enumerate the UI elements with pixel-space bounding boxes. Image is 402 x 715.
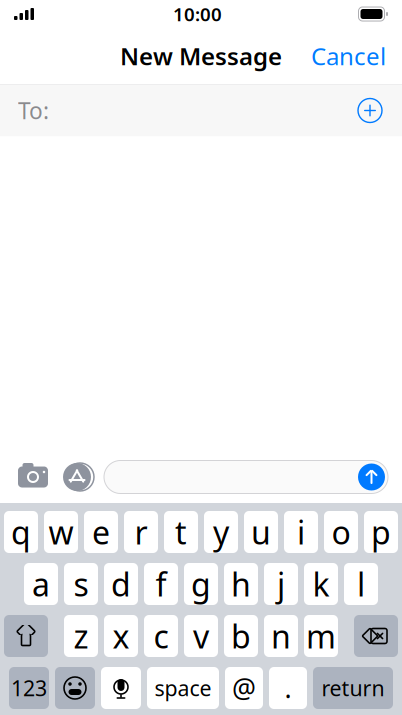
staticText: h — [231, 563, 251, 605]
button[interactable]: d — [104, 563, 138, 605]
staticText: k — [312, 563, 329, 605]
button[interactable]: Camera — [16, 462, 50, 492]
staticText: space — [154, 674, 211, 702]
staticText: @ — [232, 670, 256, 706]
button[interactable]: k — [304, 563, 338, 605]
staticText: s — [73, 563, 88, 605]
button[interactable]: n — [264, 615, 298, 657]
button[interactable]: p — [364, 511, 398, 553]
button[interactable]: . — [269, 667, 307, 709]
staticText: t — [175, 511, 187, 553]
staticText: n — [271, 615, 291, 657]
staticText: i — [297, 511, 305, 553]
button[interactable]: s — [64, 563, 98, 605]
button[interactable]: Add contact — [350, 90, 390, 130]
button[interactable]: e — [84, 511, 118, 553]
button[interactable]: Cancel — [295, 32, 402, 80]
staticText: f — [155, 563, 166, 605]
staticText: a — [32, 563, 50, 605]
staticText: y — [213, 511, 229, 553]
button[interactable]: Shift — [4, 615, 48, 657]
staticText: Cancel — [311, 40, 386, 72]
staticText: b — [231, 615, 251, 657]
staticText: x — [112, 615, 129, 657]
button[interactable]: z — [64, 615, 98, 657]
staticText: l — [357, 563, 365, 605]
staticText: z — [73, 615, 88, 657]
staticText: 10:00 — [173, 2, 222, 26]
button[interactable]: Send — [358, 463, 385, 490]
staticText: p — [371, 511, 391, 553]
button[interactable]: i — [284, 511, 318, 553]
button[interactable]: Apps — [60, 462, 94, 492]
staticText: w — [48, 511, 73, 553]
button[interactable]: u — [244, 511, 278, 553]
button[interactable]: t — [164, 511, 198, 553]
button[interactable]: w — [44, 511, 78, 553]
button[interactable]: return — [313, 667, 393, 709]
button[interactable]: b — [224, 615, 258, 657]
button[interactable]: l — [344, 563, 378, 605]
button[interactable]: Delete — [354, 615, 398, 657]
button[interactable]: @ — [225, 667, 263, 709]
button[interactable]: Emoji — [55, 667, 95, 709]
button[interactable]: y — [204, 511, 238, 553]
button[interactable]: q — [4, 511, 38, 553]
staticText: o — [331, 511, 350, 553]
button[interactable]: m — [304, 615, 338, 657]
staticText: g — [191, 563, 211, 605]
button[interactable]: o — [324, 511, 358, 553]
staticText: u — [251, 511, 271, 553]
button[interactable]: h — [224, 563, 258, 605]
button[interactable]: c — [144, 615, 178, 657]
staticText: . — [284, 670, 291, 706]
button[interactable]: v — [184, 615, 218, 657]
staticText: j — [277, 563, 285, 605]
staticText: d — [111, 563, 131, 605]
button[interactable]: a — [24, 563, 58, 605]
staticText: 123 — [11, 674, 47, 702]
staticText: c — [153, 615, 168, 657]
button[interactable]: space — [147, 667, 219, 709]
staticText: r — [134, 511, 147, 553]
button[interactable]: j — [264, 563, 298, 605]
button[interactable]: g — [184, 563, 218, 605]
button[interactable]: 123 — [9, 667, 49, 709]
staticText: return — [321, 674, 384, 702]
button[interactable]: f — [144, 563, 178, 605]
button[interactable]: x — [104, 615, 138, 657]
staticText: m — [306, 615, 336, 657]
staticText: New Message — [120, 40, 282, 72]
staticText: q — [11, 511, 31, 553]
staticText: e — [92, 511, 110, 553]
staticText: To: — [18, 95, 49, 125]
staticText: v — [193, 615, 209, 657]
button[interactable]: Dictate — [101, 667, 141, 709]
button[interactable]: r — [124, 511, 158, 553]
